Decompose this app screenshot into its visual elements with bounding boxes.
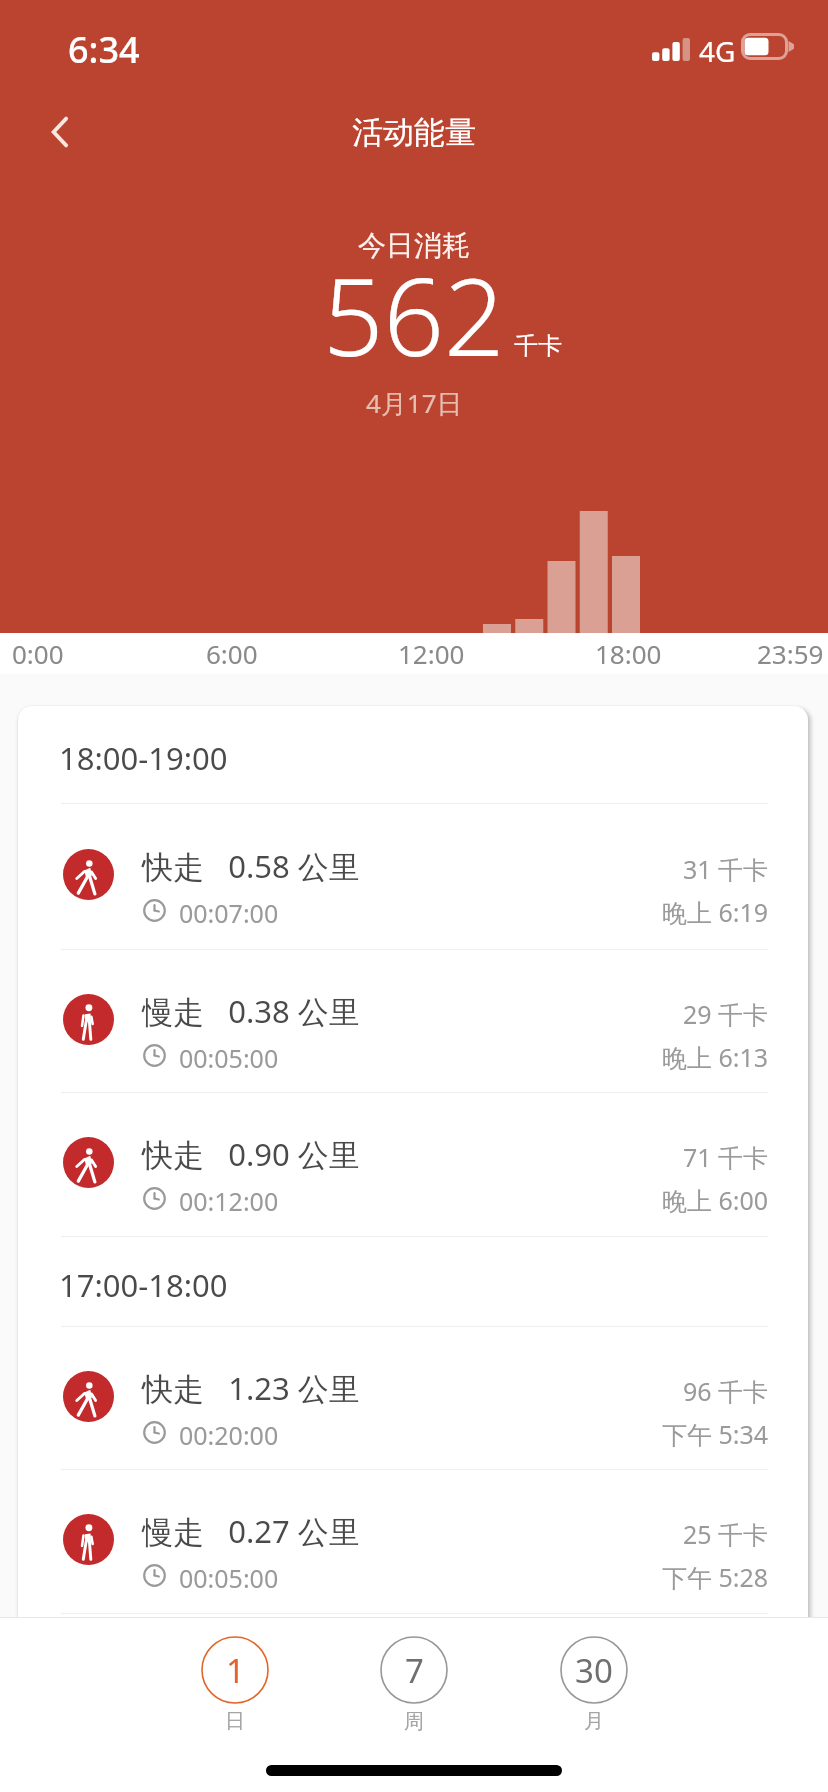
staticText: 562: [323, 243, 505, 387]
staticText: 4月17日: [366, 385, 463, 421]
staticText: 千卡: [514, 331, 562, 361]
staticText: 18:00-19:00: [59, 737, 228, 779]
staticText: 00:05:00: [179, 1041, 279, 1075]
staticText: 日: [225, 1709, 245, 1734]
staticText: 12:00: [398, 636, 465, 671]
staticText: 晚上 6:19: [662, 895, 769, 929]
staticText: 1: [226, 1648, 245, 1693]
staticText: 晚上 6:00: [662, 1183, 769, 1217]
staticText: 17:00-18:00: [59, 1264, 228, 1306]
staticText: 30: [575, 1648, 613, 1693]
staticText: 00:12:00: [179, 1184, 279, 1218]
button[interactable]: 7: [364, 1636, 464, 1748]
button[interactable]: 30: [544, 1636, 644, 1748]
staticText: 今日消耗: [358, 228, 470, 263]
staticText: 快走 0.58 公里: [142, 845, 360, 887]
staticText: 25 千卡: [683, 1517, 769, 1551]
staticText: 7: [405, 1648, 424, 1693]
staticText: 下午 5:28: [662, 1560, 769, 1594]
staticText: 6:34: [68, 25, 140, 74]
staticText: 23:59: [757, 636, 824, 671]
staticText: 96 千卡: [683, 1374, 769, 1408]
staticText: 00:05:00: [179, 1561, 279, 1595]
staticText: 6:00: [206, 636, 258, 671]
button[interactable]: 快走 0.58 公里: [18, 804, 808, 949]
staticText: 下午 5:34: [662, 1417, 769, 1451]
button[interactable]: 快走 1.23 公里: [18, 1327, 808, 1469]
button[interactable]: 快走 0.90 公里: [18, 1093, 808, 1236]
staticText: 29 千卡: [683, 997, 769, 1031]
staticText: 周: [404, 1709, 424, 1734]
staticText: 71 千卡: [683, 1140, 769, 1174]
staticText: 月: [584, 1709, 604, 1734]
button[interactable]: 慢走 0.38 公里: [18, 950, 808, 1092]
staticText: 慢走 0.27 公里: [142, 1510, 360, 1552]
staticText: 00:20:00: [179, 1418, 279, 1452]
staticText: 慢走 0.38 公里: [142, 990, 360, 1032]
staticText: 快走 0.90 公里: [142, 1133, 360, 1175]
staticText: 快走 1.23 公里: [142, 1367, 360, 1409]
staticText: 18:00: [595, 636, 662, 671]
staticText: 0:00: [12, 636, 64, 671]
staticText: 4G: [699, 32, 736, 70]
staticText: 31 千卡: [683, 852, 769, 886]
staticText: 活动能量: [352, 113, 476, 152]
staticText: 晚上 6:13: [662, 1040, 769, 1074]
button[interactable]: 慢走 0.27 公里: [18, 1470, 808, 1613]
button[interactable]: 1: [185, 1636, 285, 1748]
staticText: 00:07:00: [179, 896, 279, 930]
button[interactable]: Back: [22, 94, 98, 170]
